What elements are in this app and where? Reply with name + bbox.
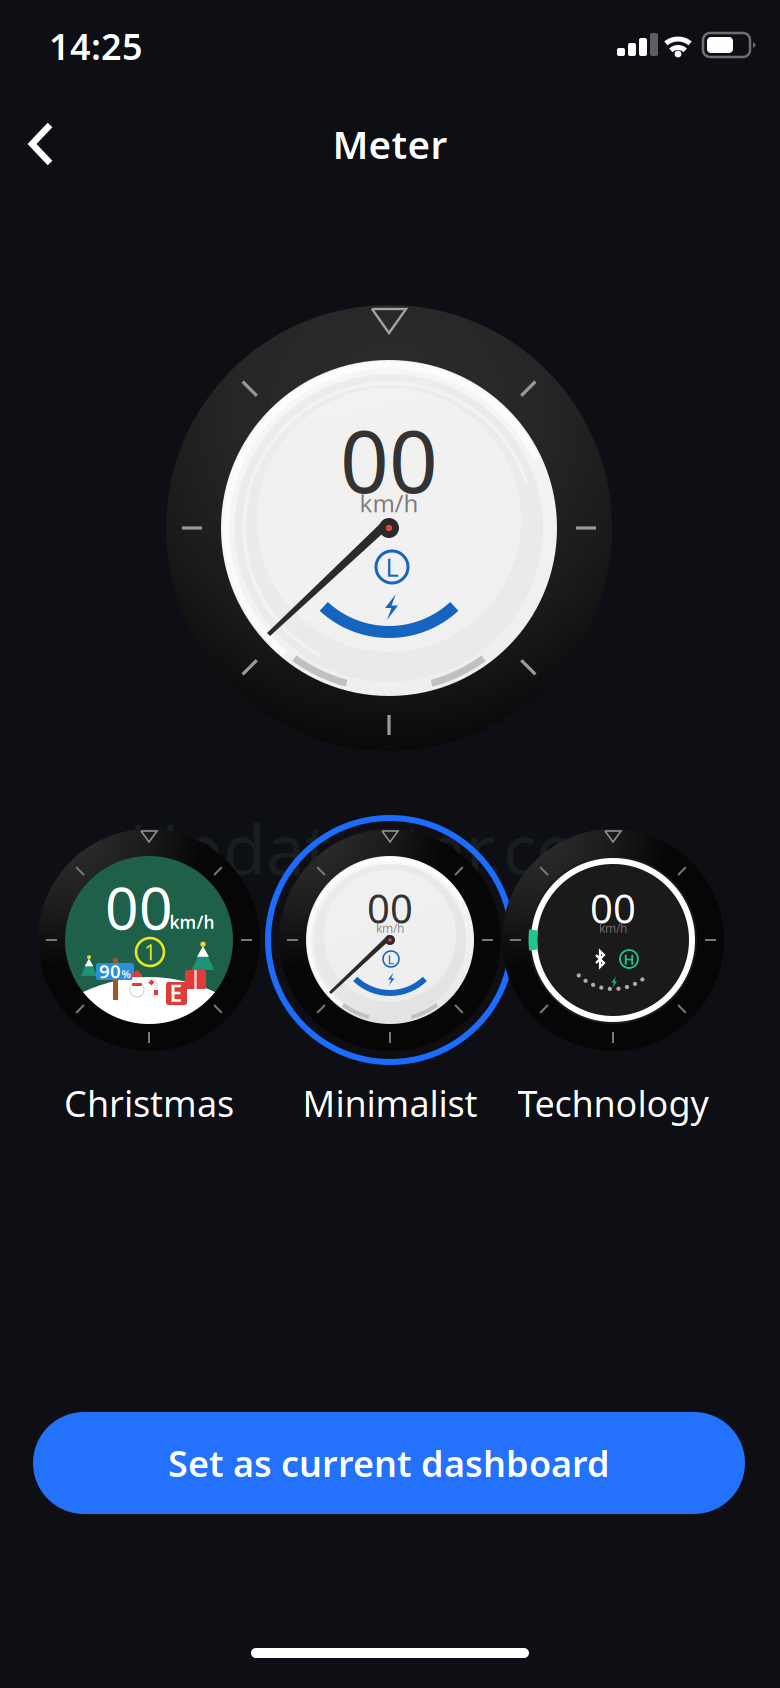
staticText: E — [169, 978, 182, 1008]
staticText: L — [385, 550, 398, 584]
staticText: Minimalist — [302, 1079, 477, 1127]
staticText: 00 — [367, 881, 413, 934]
staticText: km/h — [169, 910, 214, 933]
staticText: Christmas — [64, 1079, 234, 1127]
button[interactable]: Technology — [490, 813, 736, 1143]
staticText: 00 — [590, 881, 636, 934]
staticText: Set as current dashboard — [168, 1439, 610, 1487]
button[interactable]: Back — [2, 108, 78, 180]
staticText: 90 — [99, 959, 121, 983]
staticText: Updatestar.com — [129, 802, 643, 894]
button[interactable]: Christmas — [26, 813, 272, 1143]
staticText: H — [623, 949, 634, 969]
staticText: km/h — [376, 920, 404, 936]
staticText: % — [121, 967, 130, 981]
button[interactable]: Minimalist — [267, 813, 513, 1143]
staticText: 14:25 — [49, 22, 143, 70]
staticText: Technology — [517, 1079, 708, 1127]
staticText: L — [387, 950, 394, 968]
staticText: Meter — [332, 118, 447, 170]
staticText: 00 — [105, 868, 173, 946]
staticText: 1 — [144, 938, 156, 966]
button[interactable]: Set as current dashboard — [33, 1412, 745, 1514]
staticText: km/h — [599, 920, 627, 936]
staticText: 00 — [340, 403, 438, 517]
staticText: km/h — [359, 487, 418, 519]
